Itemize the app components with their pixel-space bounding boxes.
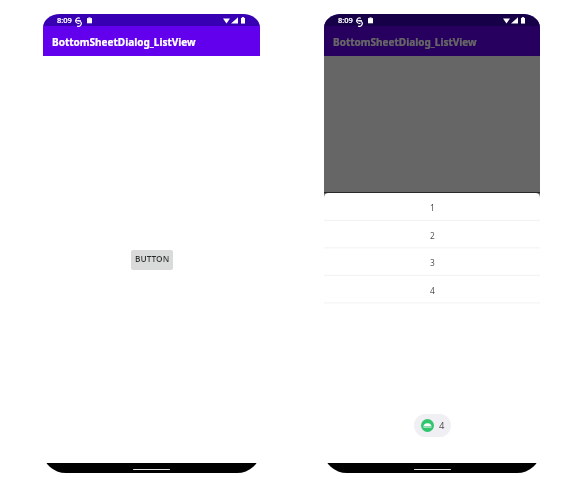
button[interactable]: BUTTON [411,250,453,270]
staticText: BottomSheetDialog_ListView [333,35,477,49]
button[interactable]: 4 [324,276,540,304]
button[interactable]: 3 [324,248,540,276]
staticText: BottomSheetDialog_ListView [52,35,196,49]
staticText: 3 [430,257,435,268]
staticText: 4 [430,285,435,296]
button[interactable]: 2 [324,221,540,249]
staticText: 2 [430,230,435,241]
staticText: 8:09 [338,15,353,25]
staticText: 8:09 [57,15,72,25]
button[interactable]: BUTTON [131,250,173,270]
button[interactable]: Android emulator device [414,414,451,437]
staticText: BUTTON [415,253,450,264]
staticText: 1 [430,202,435,213]
staticText: 4 [439,419,445,432]
button[interactable]: 1 [324,193,540,221]
staticText: BUTTON [135,253,170,264]
